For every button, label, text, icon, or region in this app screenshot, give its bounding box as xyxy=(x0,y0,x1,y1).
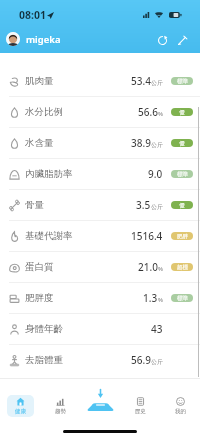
staticText: 骨量 xyxy=(25,199,44,211)
staticText: 優 xyxy=(179,202,185,209)
staticText: 水含量 xyxy=(25,137,54,149)
staticText: 基礎代謝率 xyxy=(25,230,73,242)
staticText: 1.3 xyxy=(143,291,158,305)
staticText: 標準 xyxy=(177,295,188,302)
staticText: 56.9 xyxy=(131,353,151,367)
staticText: 9.0 xyxy=(148,167,163,181)
staticText: 健康 xyxy=(15,408,26,415)
staticText: % xyxy=(158,265,163,273)
staticText: 內臟脂肪率 xyxy=(25,168,73,180)
button[interactable]: 基礎代謝率 xyxy=(0,221,200,251)
staticText: 趨勢 xyxy=(55,408,66,415)
other: Measure xyxy=(87,389,114,418)
button[interactable]: 水含量 xyxy=(0,128,200,158)
button[interactable]: 我的 xyxy=(160,379,200,428)
staticText: 去脂體重 xyxy=(25,354,63,366)
button[interactable]: 內臟脂肪率 xyxy=(0,159,200,189)
staticText: 身體年齡 xyxy=(25,323,63,335)
button[interactable]: 去脂體重 xyxy=(0,345,200,375)
staticText: 肥胖度 xyxy=(25,292,54,304)
button[interactable]: 蛋白質 xyxy=(0,252,200,282)
button[interactable]: Edit xyxy=(173,31,191,49)
staticText: 43 xyxy=(151,322,163,336)
staticText: 肥胖 xyxy=(177,233,188,240)
staticText: 38.9 xyxy=(131,136,151,150)
staticText: 水分比例 xyxy=(25,106,63,118)
button[interactable]: 趨勢 xyxy=(40,379,80,428)
button[interactable]: 骨量 xyxy=(0,190,200,220)
button[interactable]: Measure xyxy=(80,379,120,428)
staticText: 標準 xyxy=(177,171,188,178)
staticText: 56.6 xyxy=(138,105,158,119)
staticText: 3.5 xyxy=(136,198,151,212)
button[interactable]: 肌肉量 xyxy=(0,66,200,96)
staticText: 肌肉量 xyxy=(25,75,54,87)
staticText: 超標 xyxy=(177,264,188,271)
staticText: 53.4 xyxy=(131,74,151,88)
button[interactable]: 水分比例 xyxy=(0,97,200,127)
staticText: 優 xyxy=(179,140,185,147)
staticText: 優 xyxy=(179,109,185,116)
staticText: 我的 xyxy=(175,408,186,415)
staticText: 08:01 xyxy=(19,8,46,22)
button[interactable]: 身體年齡 xyxy=(0,314,200,344)
staticText: 蛋白質 xyxy=(25,261,54,273)
staticText: 公斤 xyxy=(151,358,163,366)
staticText: 公斤 xyxy=(151,203,163,211)
staticText: % xyxy=(158,296,163,304)
staticText: % xyxy=(158,110,163,118)
button[interactable]: 健康 xyxy=(0,379,40,428)
staticText: 標準 xyxy=(177,78,188,85)
staticText: migeka xyxy=(26,33,61,46)
staticText: 公斤 xyxy=(151,79,163,87)
button[interactable]: Refresh xyxy=(153,31,171,49)
button[interactable]: migeka xyxy=(6,32,61,46)
button[interactable]: 歷史 xyxy=(120,379,160,428)
staticText: 1516.4 xyxy=(131,229,163,243)
staticText: 歷史 xyxy=(135,408,146,415)
button[interactable]: 肥胖度 xyxy=(0,283,200,313)
staticText: 21.0 xyxy=(138,260,158,274)
staticText: 公斤 xyxy=(151,141,163,149)
